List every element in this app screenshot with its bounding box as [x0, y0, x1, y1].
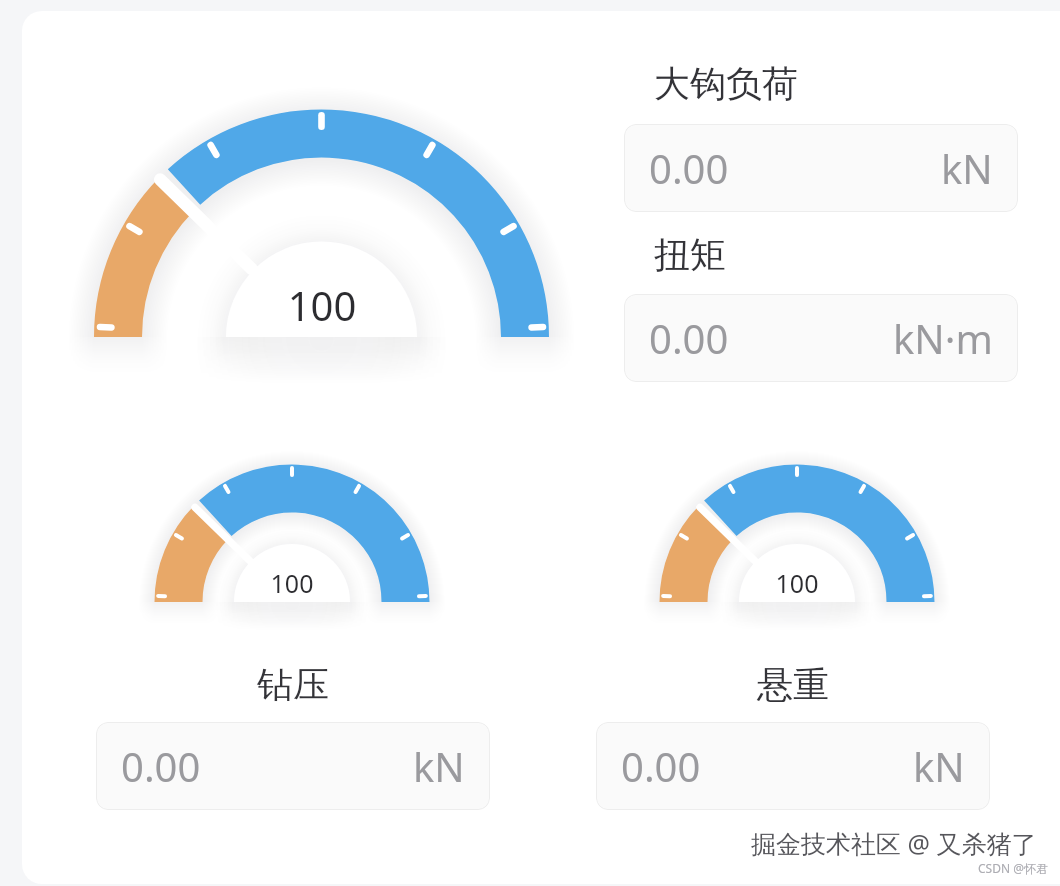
button[interactable]: 大钩负荷仪表 100: [44, 57, 600, 457]
staticText: 100: [232, 566, 352, 600]
staticText: 大钩负荷: [654, 61, 798, 106]
button[interactable]: 0.00: [624, 124, 1018, 212]
staticText: 100: [262, 278, 382, 332]
button[interactable]: 0.00: [96, 722, 490, 810]
staticText: kN: [413, 739, 465, 793]
staticText: 钻压: [257, 662, 329, 707]
staticText: kN·m: [893, 311, 993, 365]
button[interactable]: 0.00: [596, 722, 990, 810]
staticText: 悬重: [757, 662, 829, 707]
button[interactable]: 钻压仪表 100: [112, 422, 472, 682]
staticText: 0.00: [649, 311, 729, 365]
staticText: CSDN @怀君: [978, 860, 1048, 876]
staticText: 0.00: [621, 739, 701, 793]
staticText: 0.00: [121, 739, 201, 793]
button[interactable]: 0.00: [624, 294, 1018, 382]
staticText: 100: [737, 566, 857, 600]
staticText: kN: [941, 141, 993, 195]
staticText: 掘金技术社区 @ 又杀猪了: [751, 826, 1037, 860]
staticText: kN: [913, 739, 965, 793]
staticText: 0.00: [649, 141, 729, 195]
button[interactable]: 悬重仪表 100: [617, 422, 977, 682]
staticText: 扭矩: [654, 232, 726, 277]
